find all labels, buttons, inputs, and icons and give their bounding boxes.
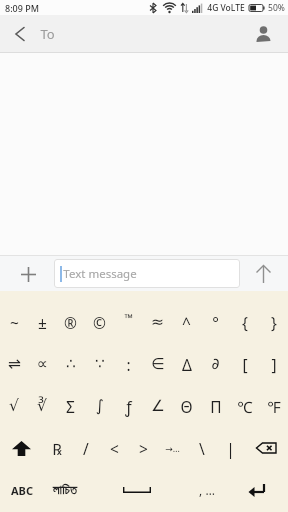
staticText: To — [40, 25, 55, 43]
staticText: Σ — [66, 396, 75, 417]
button[interactable]: | — [216, 427, 245, 469]
staticText: √ — [9, 397, 19, 415]
staticText: [ — [242, 354, 248, 375]
button[interactable] — [8, 23, 30, 45]
button[interactable]: Σ — [56, 385, 85, 427]
button[interactable]: Δ — [172, 343, 201, 385]
staticText: ℉ — [267, 396, 281, 417]
button[interactable]: > — [129, 427, 158, 469]
staticText: ∝ — [36, 355, 48, 373]
button[interactable]: √ — [0, 385, 28, 427]
staticText: } — [271, 312, 277, 333]
button[interactable]: ∂ — [201, 343, 230, 385]
staticText: | — [226, 438, 235, 459]
staticText: / — [83, 438, 89, 459]
button[interactable]: © — [85, 301, 114, 343]
staticText: Π — [210, 396, 222, 417]
button[interactable]: ƒ — [114, 385, 143, 427]
staticText: ∂ — [211, 355, 220, 373]
button[interactable]: ± — [28, 301, 56, 343]
staticText: ™ — [124, 311, 133, 325]
staticText: ° — [212, 312, 219, 333]
button[interactable]: ∠ — [143, 385, 172, 427]
button[interactable]: ^ — [172, 301, 201, 343]
button[interactable]: ≈ — [143, 301, 172, 343]
button[interactable]: ° — [201, 301, 230, 343]
staticText: ∠ — [151, 397, 165, 415]
button[interactable]: ∝ — [28, 343, 56, 385]
button[interactable]: ℃ — [230, 385, 259, 427]
button[interactable]: ∴ — [56, 343, 85, 385]
button[interactable]: ∛ — [28, 385, 56, 427]
staticText: ~ — [10, 312, 19, 333]
button[interactable]: →… — [158, 427, 187, 469]
staticText: Δ — [182, 354, 192, 375]
staticText: ^ — [182, 312, 191, 333]
button[interactable] — [0, 427, 43, 469]
staticText: 4G VoLTE — [207, 2, 245, 14]
button[interactable]: ℞ — [43, 427, 71, 469]
button[interactable] — [17, 263, 39, 285]
button[interactable] — [86, 469, 188, 511]
staticText: ∴ — [66, 355, 76, 373]
staticText: লাচিত — [53, 484, 77, 497]
staticText: ∫ — [95, 397, 104, 415]
button[interactable]: ® — [56, 301, 85, 343]
staticText: , … — [199, 482, 215, 498]
button[interactable]: Π — [201, 385, 230, 427]
staticText: Θ — [180, 396, 193, 417]
button[interactable]: { — [230, 301, 259, 343]
staticText: 50% — [268, 2, 285, 14]
staticText: ℞ — [52, 438, 62, 459]
staticText: ® — [64, 312, 77, 333]
staticText: ≈ — [151, 313, 164, 331]
button[interactable]: Text message — [54, 259, 240, 288]
button[interactable]: : — [114, 343, 143, 385]
button[interactable]: ⇌ — [0, 343, 28, 385]
staticText: Text message — [63, 266, 137, 282]
staticText: ƒ — [125, 396, 132, 417]
button[interactable]: ] — [259, 343, 288, 385]
button[interactable] — [226, 469, 288, 511]
button[interactable]: ∵ — [85, 343, 114, 385]
staticText: ∵ — [95, 355, 105, 373]
staticText: ± — [38, 312, 47, 333]
button[interactable] — [252, 23, 274, 45]
staticText: { — [242, 312, 248, 333]
staticText: ℃ — [237, 396, 253, 417]
staticText: < — [110, 438, 119, 459]
button[interactable]: ™ — [114, 301, 143, 343]
staticText: →… — [165, 442, 180, 454]
button[interactable]: [ — [230, 343, 259, 385]
button[interactable]: } — [259, 301, 288, 343]
staticText: 8:09 PM — [5, 2, 39, 14]
staticText: > — [139, 438, 148, 459]
button[interactable]: Θ — [172, 385, 201, 427]
button[interactable]: < — [100, 427, 129, 469]
button[interactable]: ABC — [0, 469, 43, 511]
staticText: : — [126, 354, 131, 375]
staticText: \ — [199, 438, 205, 459]
staticText: ∛ — [37, 397, 47, 415]
staticText: ] — [271, 354, 277, 375]
button[interactable]: ~ — [0, 301, 28, 343]
button[interactable]: ∈ — [143, 343, 172, 385]
button[interactable]: , … — [188, 469, 226, 511]
staticText: ⇌ — [8, 355, 21, 373]
staticText: ABC — [11, 483, 33, 498]
button[interactable]: / — [71, 427, 100, 469]
button[interactable]: ∫ — [85, 385, 114, 427]
button[interactable] — [251, 262, 275, 286]
button[interactable]: লাচিত — [43, 469, 86, 511]
button[interactable] — [245, 427, 288, 469]
button[interactable]: \ — [187, 427, 216, 469]
button[interactable]: ℉ — [259, 385, 288, 427]
staticText: ∈ — [151, 355, 165, 373]
staticText: © — [93, 312, 106, 333]
